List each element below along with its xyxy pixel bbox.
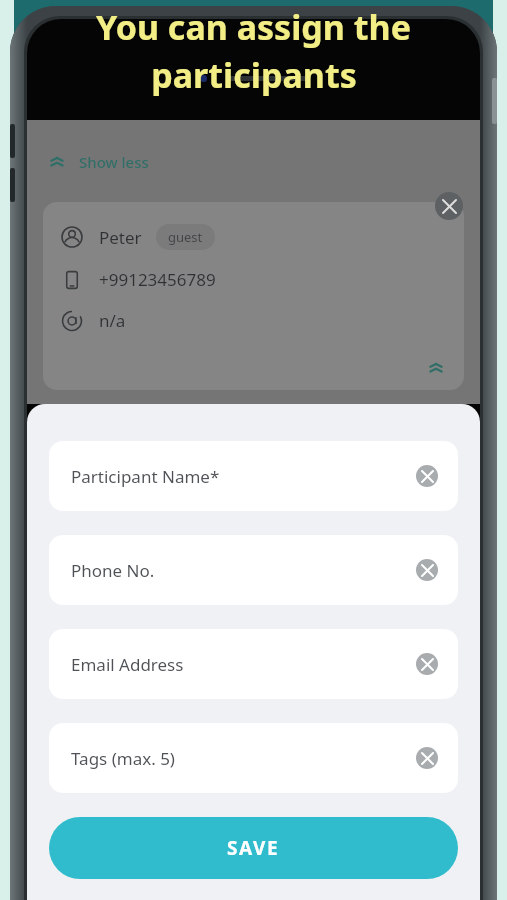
staticText: Email Address [71,653,184,676]
staticText: participants [151,52,357,98]
staticText: guest [168,228,203,246]
staticText: +99123456789 [99,268,216,291]
button[interactable]: Tags (max. 5) [49,723,458,793]
button[interactable]: Clear Email Address [416,653,438,675]
staticText: You can assign the [96,4,411,50]
staticText: SAVE [227,835,280,861]
staticText: Tags (max. 5) [71,747,175,770]
staticText: Peter [99,226,142,249]
staticText: Phone No. [71,559,155,582]
button[interactable]: Collapse [422,354,450,382]
staticText: n/a [99,309,126,332]
button[interactable]: Clear Phone No. [416,559,438,581]
button[interactable]: Clear Participant Name* [416,465,438,487]
button[interactable]: Peter [43,202,464,390]
staticText: Show less [79,152,149,172]
button[interactable]: Show less [43,148,153,176]
button[interactable]: Participant Name* [49,441,458,511]
staticText: Participant Name* [71,465,220,488]
button[interactable]: SAVE [49,817,458,879]
button[interactable]: Phone No. [49,535,458,605]
button[interactable]: Clear Tags (max. 5) [416,747,438,769]
button[interactable]: Email Address [49,629,458,699]
button[interactable]: Remove participant [435,192,463,220]
